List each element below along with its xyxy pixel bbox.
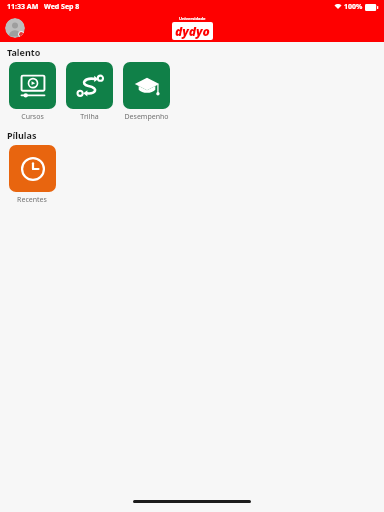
staticText: Desempenho [124, 112, 169, 122]
staticText: Trilha [80, 112, 99, 122]
button[interactable]: Profile [5, 18, 25, 38]
staticText: Recentes [17, 195, 47, 205]
button[interactable]: Trilha [63, 62, 115, 122]
staticText: Cursos [21, 112, 44, 122]
button[interactable]: Cursos [6, 62, 58, 122]
button[interactable]: Recentes [6, 145, 58, 205]
staticText: dydyo [175, 23, 210, 39]
staticText: 100% [344, 2, 363, 12]
button[interactable]: Desempenho [120, 62, 172, 122]
staticText: 11:33 AM [7, 2, 39, 12]
staticText: Wed Sep 8 [44, 2, 80, 12]
staticText: Pílulas [7, 129, 37, 141]
staticText: Universidade [179, 16, 206, 21]
staticText: Talento [7, 46, 41, 58]
